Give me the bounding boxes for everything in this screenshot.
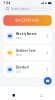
button[interactable]: Search devices bbox=[3, 6, 52, 12]
staticText: Doorbell bbox=[16, 66, 29, 69]
button[interactable]: Devices bbox=[0, 87, 27, 100]
button[interactable]: Weekly Stream bbox=[3, 28, 52, 44]
staticText: Weekly Stream bbox=[16, 32, 37, 36]
button[interactable]: Outdoor Cam bbox=[3, 45, 52, 60]
staticText: 7:04 bbox=[4, 1, 11, 5]
button[interactable]: Get 23400 mAh bbox=[3, 15, 52, 26]
button[interactable]: Profile bbox=[27, 87, 55, 100]
staticText: Get 23400 mAh bbox=[15, 19, 39, 22]
button[interactable]: Doorbell bbox=[3, 62, 52, 77]
button[interactable]: Add device bbox=[44, 77, 52, 85]
staticText: Idle bbox=[16, 70, 22, 73]
staticText: Now bbox=[16, 53, 22, 57]
staticText: Search devices bbox=[11, 7, 29, 11]
staticText: Mon bbox=[16, 36, 22, 40]
staticText: Outdoor Cam bbox=[16, 49, 36, 52]
